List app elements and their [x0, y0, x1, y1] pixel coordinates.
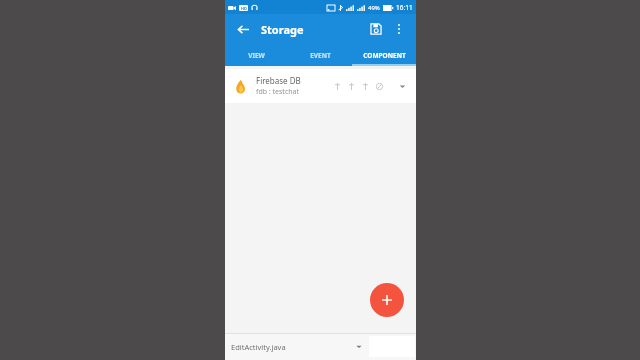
button[interactable]: Expand — [396, 80, 408, 92]
staticText: COMPONENT — [363, 51, 406, 60]
button[interactable]: Firebase DB — [225, 69, 416, 103]
staticText: 49% — [368, 4, 380, 12]
button[interactable]: VIEW — [225, 44, 288, 66]
staticText: HD — [241, 6, 247, 11]
button[interactable]: More options — [388, 18, 410, 40]
button[interactable]: Add — [370, 283, 404, 317]
button[interactable]: Action — [332, 81, 342, 91]
button[interactable]: Action — [360, 81, 370, 91]
button[interactable]: Back — [231, 17, 255, 41]
button[interactable]: Disable — [374, 81, 384, 91]
staticText: EVENT — [310, 51, 331, 60]
staticText: VIEW — [248, 51, 265, 60]
button[interactable]: EVENT — [288, 44, 352, 66]
button[interactable]: EditActivity.java — [231, 336, 369, 357]
staticText: 16:11 — [396, 3, 413, 12]
staticText: Firebase DB — [256, 75, 301, 86]
staticText: Storage — [261, 22, 304, 37]
button[interactable]: COMPONENT — [352, 44, 416, 66]
staticText: EditActivity.java — [231, 342, 286, 352]
staticText: fdb : testchat — [256, 87, 300, 97]
button[interactable]: Save — [364, 17, 388, 41]
button[interactable]: Action — [346, 81, 356, 91]
